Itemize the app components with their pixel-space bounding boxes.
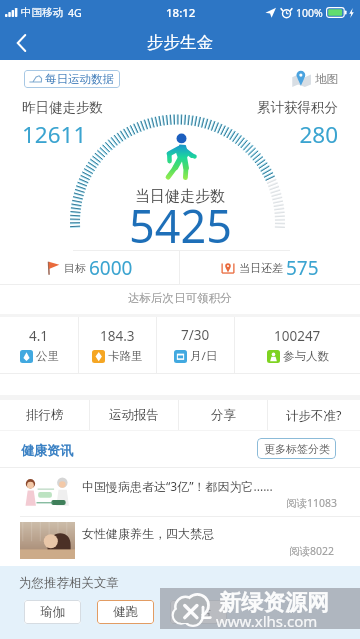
staticText: 参与人数 [283,349,329,363]
staticText: 每日运动数据 [45,72,114,86]
staticText: 18:12 [166,5,196,21]
staticText: 阅读8022 [289,544,335,558]
staticText: 健康资讯 [21,442,73,458]
staticText: 阅读11083 [286,496,338,510]
staticText: 100247 [274,327,321,345]
button[interactable]: 地图 [291,70,338,87]
staticText: 步步生金 [147,32,213,53]
staticText: 分享 [211,407,236,423]
staticText: 计步不准? [286,407,342,424]
button[interactable]: 中国慢病患者达“3亿”！都因为它...... [0,468,360,516]
staticText: 昨日健走步数 [22,99,103,116]
staticText: 当日还差 [239,261,283,275]
staticText: 6000 [89,255,133,281]
button[interactable]: 瑜伽 [24,600,81,624]
button[interactable]: 生活 [170,600,227,624]
staticText: 4.1 [29,327,49,345]
staticText: 12611 [22,119,87,150]
button[interactable]: Back [6,28,36,58]
staticText: 月/日 [190,348,218,364]
staticText: 575 [286,255,319,281]
staticText: 公里 [36,349,59,363]
staticText: 累计获得积分 [257,99,338,116]
button[interactable]: 7/30 [157,317,234,373]
staticText: 地图 [315,72,338,86]
button[interactable]: 健跑 [97,600,154,624]
button[interactable]: 目标 [0,251,179,284]
button[interactable]: 每日运动数据 [24,70,120,88]
button[interactable]: 运动报告 [90,400,178,430]
staticText: 为您推荐相关文章 [19,575,119,591]
button[interactable]: 100247 [235,317,360,373]
button[interactable]: 4.1 [0,317,78,373]
staticText: www.xlhs.com [216,611,318,631]
button[interactable]: 排行榜 [0,400,89,430]
button[interactable]: 女性健康养生，四大禁忌 [0,517,360,566]
button[interactable]: 当日还差 [180,251,360,284]
staticText: 运动报告 [109,407,159,423]
staticText: 5425 [129,195,232,256]
staticText: 达标后次日可领积分 [128,291,232,305]
staticText: 新绿资源网 [219,589,329,617]
staticText: 目标 [64,261,86,275]
staticText: 280 [299,119,338,150]
staticText: 7/30 [181,326,210,344]
staticText: 健跑 [113,604,138,620]
staticText: 100% [296,6,323,20]
button[interactable]: 184.3 [79,317,156,373]
staticText: 当日健走步数 [135,187,225,206]
staticText: 更多标签分类 [264,442,330,456]
staticText: 中国移动 [21,6,63,19]
staticText: 生活 [186,604,211,620]
staticText: 4G [68,6,82,20]
staticText: 中国慢病患者达“3亿”！都因为它...... [82,478,273,494]
staticText: 184.3 [100,327,135,345]
button[interactable]: 更多标签分类 [257,438,336,459]
staticText: 卡路里 [108,349,143,363]
staticText: 女性健康养生，四大禁忌 [82,526,214,541]
staticText: 排行榜 [26,407,64,423]
button[interactable]: 分享 [179,400,267,430]
button[interactable]: 计步不准? [268,400,360,430]
staticText: 瑜伽 [40,604,65,620]
